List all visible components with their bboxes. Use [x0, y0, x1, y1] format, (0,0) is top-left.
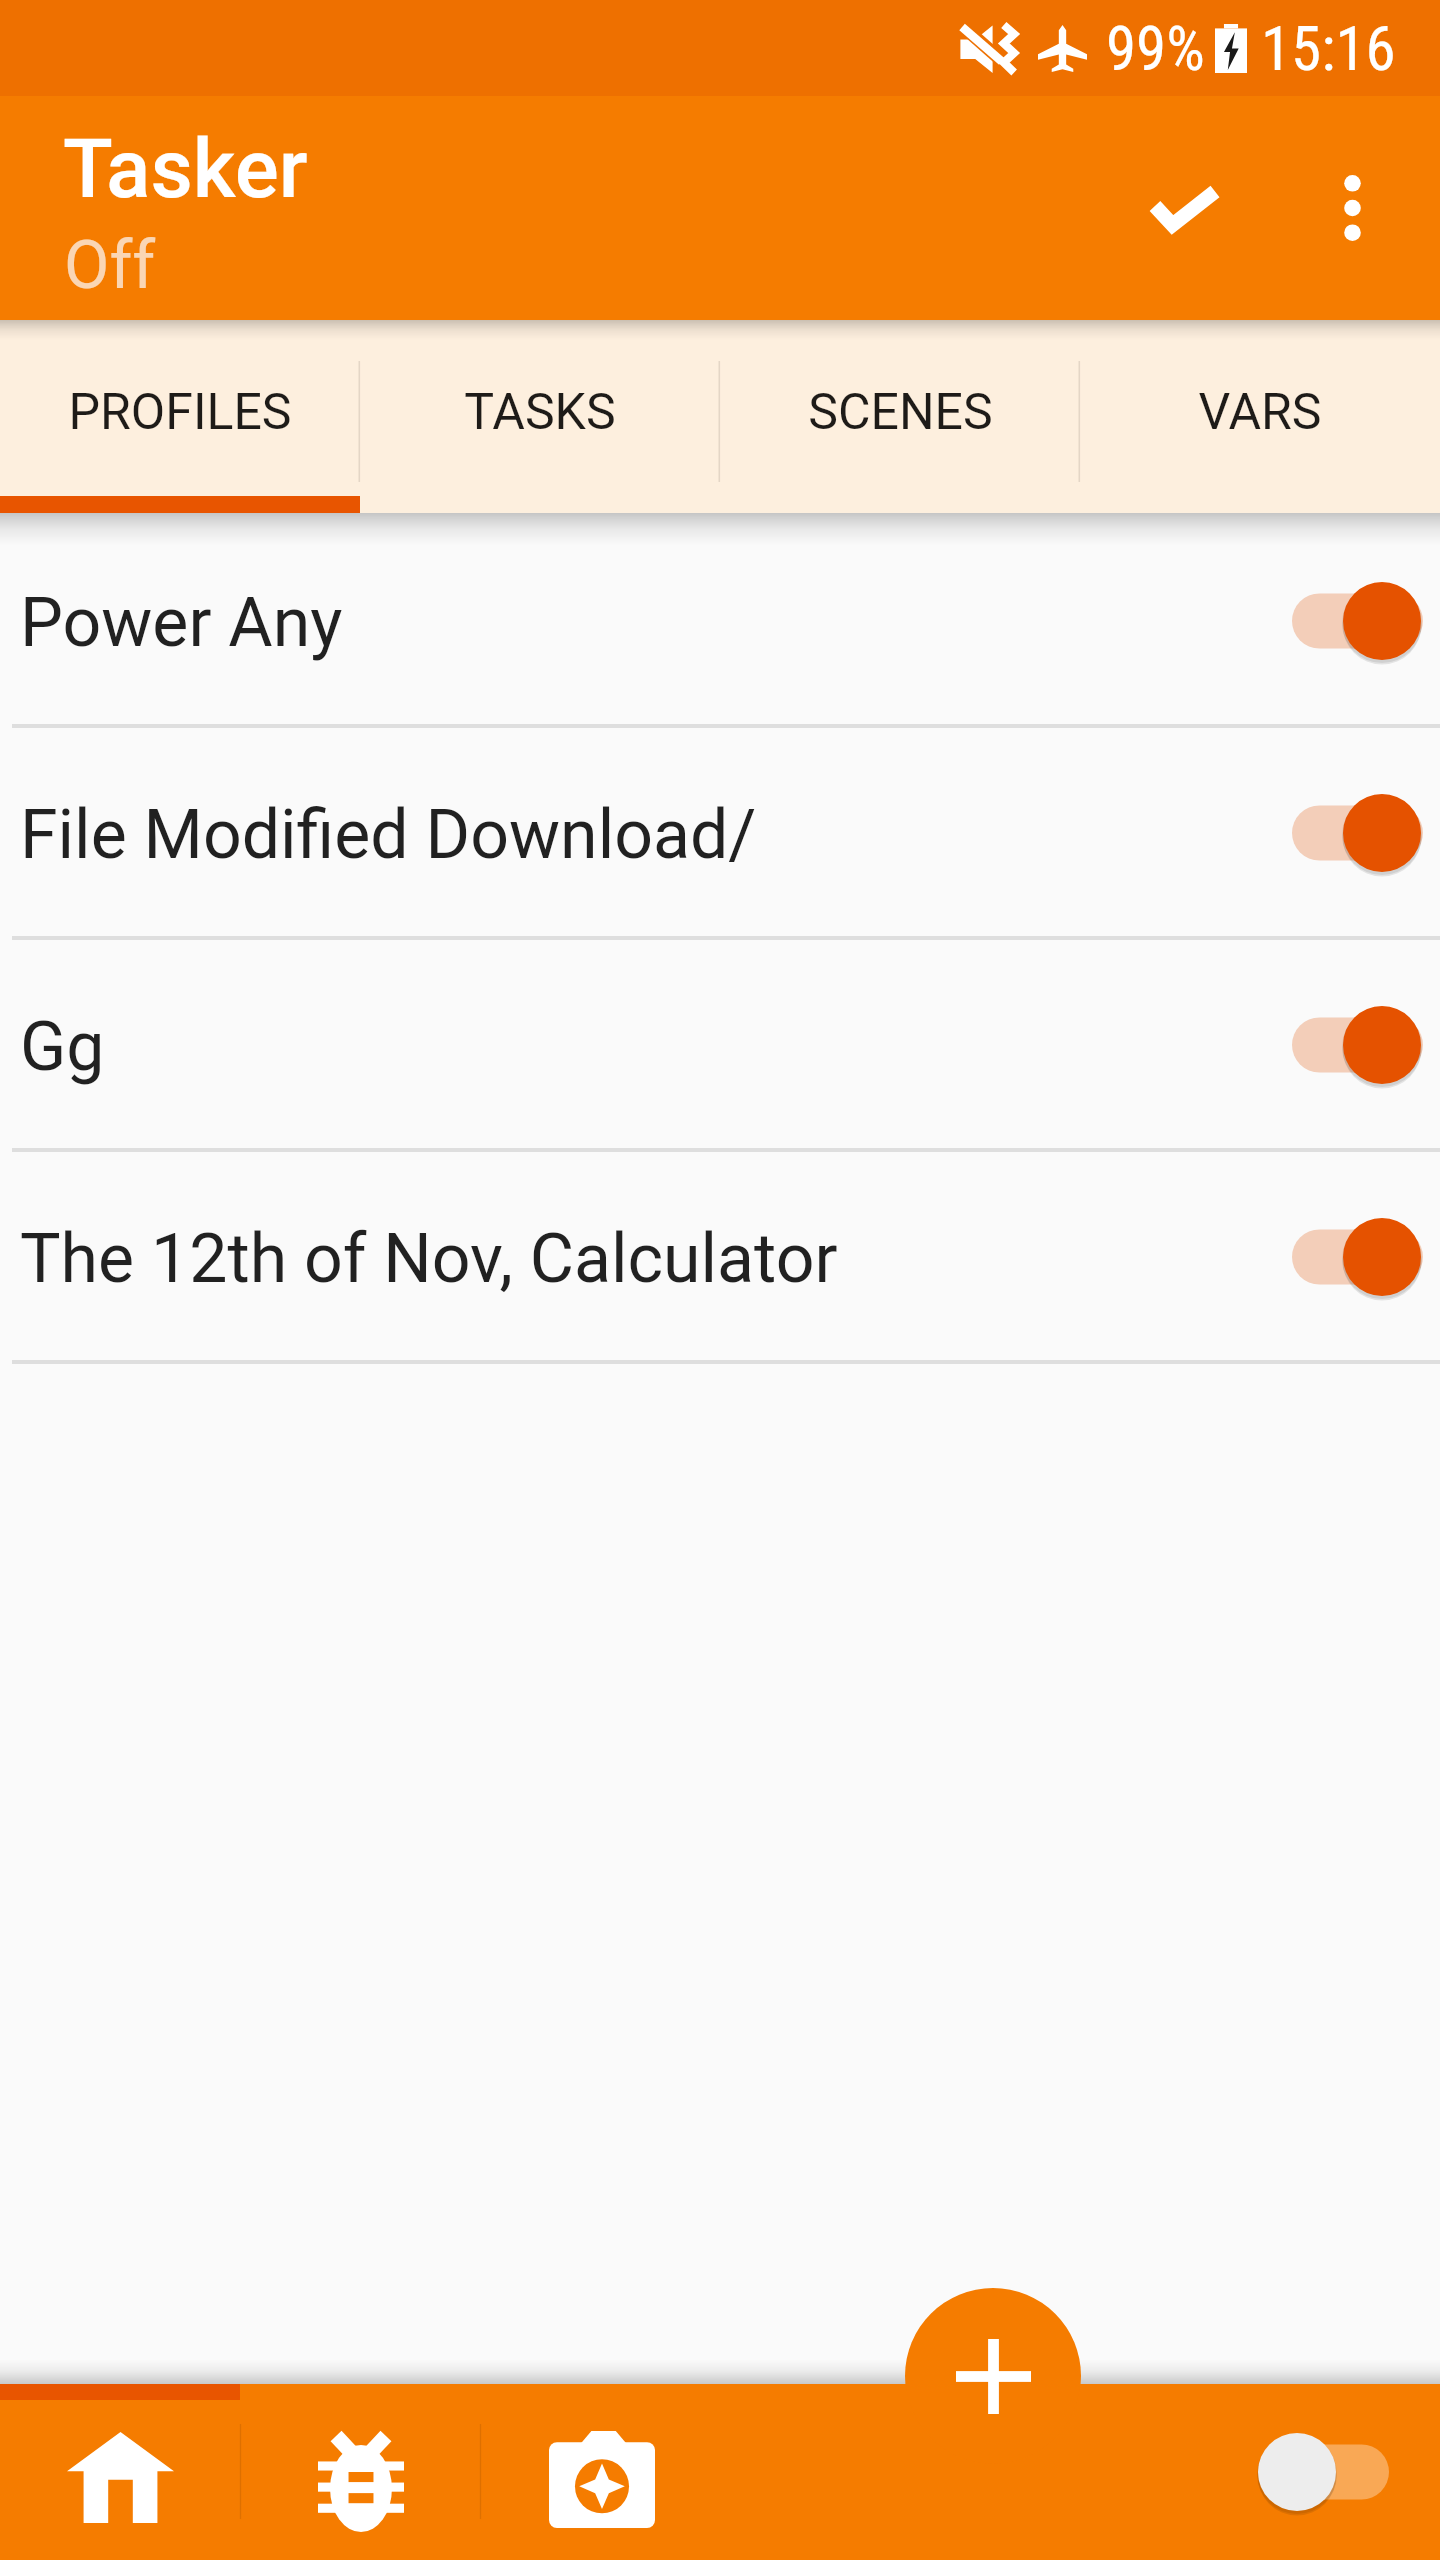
button[interactable]: The 12th of Nov, Calculator — [0, 1149, 1440, 1361]
button[interactable]: Toggle Gg — [1260, 985, 1440, 1105]
button[interactable]: PROFILES — [0, 320, 360, 496]
button[interactable]: Home — [0, 2384, 240, 2560]
staticText: 99% — [1106, 13, 1205, 84]
button[interactable]: File Modified Download/ — [0, 725, 1440, 937]
button[interactable]: Gg — [0, 937, 1440, 1149]
staticText: File Modified Download/ — [20, 795, 757, 875]
button[interactable]: Debug log — [240, 2384, 480, 2560]
button[interactable]: Scene camera — [480, 2384, 720, 2560]
staticText: The 12th of Nov, Calculator — [20, 1219, 838, 1299]
staticText: TASKS — [464, 383, 616, 442]
staticText: SCENES — [808, 383, 993, 442]
button[interactable]: Toggle File Modified Download/ — [1260, 773, 1440, 893]
button[interactable]: More options — [1280, 136, 1424, 280]
staticText: VARS — [1198, 383, 1322, 442]
staticText: PROFILES — [68, 383, 292, 442]
button[interactable]: Enable Tasker — [1180, 2384, 1440, 2560]
button[interactable]: Toggle The 12th of Nov, Calculator — [1260, 1197, 1440, 1317]
button[interactable]: Add profile — [905, 2288, 1081, 2464]
button[interactable]: Apply — [1113, 137, 1257, 281]
button[interactable]: SCENES — [720, 320, 1080, 496]
staticText: Tasker — [63, 121, 308, 217]
staticText: 15:16 — [1261, 13, 1396, 84]
staticText: Power Any — [20, 583, 343, 663]
button[interactable]: TASKS — [360, 320, 720, 496]
staticText: Gg — [20, 1007, 105, 1087]
button[interactable]: VARS — [1080, 320, 1440, 496]
staticText: Off — [64, 227, 156, 304]
button[interactable]: Power Any — [0, 513, 1440, 725]
button[interactable]: Toggle Power Any — [1260, 561, 1440, 681]
